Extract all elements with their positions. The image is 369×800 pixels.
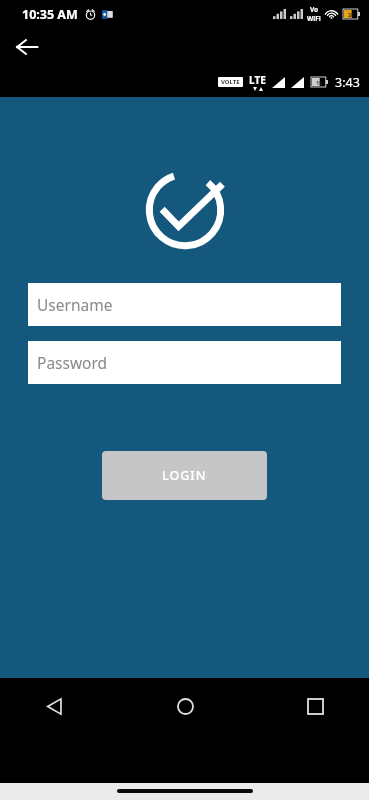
staticText: 3:43 [335,74,360,91]
staticText: VOLTE [221,78,240,86]
staticText: 10:35 AM [22,6,78,23]
button[interactable]: Back [30,682,78,730]
staticText: 26 [348,11,355,18]
staticText: 19 [316,79,323,86]
staticText: Username [37,294,113,315]
button[interactable]: Home [161,682,209,730]
button[interactable]: Back [9,29,45,65]
button[interactable]: Recents [291,682,339,730]
staticText: Vo [310,5,319,14]
staticText: Password [37,352,108,373]
staticText: WiFi [307,14,321,23]
staticText: LTE [249,73,266,87]
button[interactable]: LOGIN [102,451,267,500]
button[interactable]: Username [28,283,341,326]
staticText: LOGIN [162,467,207,484]
button[interactable]: Password [28,341,341,384]
